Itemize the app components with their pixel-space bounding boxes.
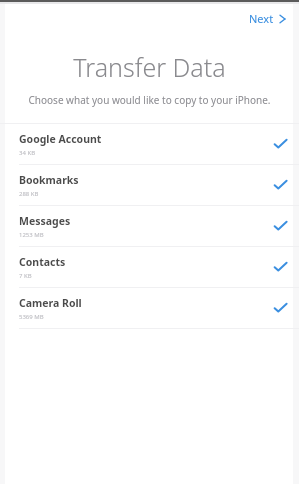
button[interactable]: Next	[245, 8, 290, 29]
staticText: 5369 MB	[19, 313, 44, 321]
staticText: Google Account	[19, 132, 102, 146]
staticText: Contacts	[19, 255, 66, 269]
staticText: Transfer Data	[0, 50, 299, 84]
other: Selected Google Account	[270, 134, 290, 154]
other: Selected Messages	[270, 216, 290, 236]
other: Selected Contacts	[270, 257, 290, 277]
staticText: Messages	[19, 214, 71, 228]
staticText: 34 KB	[19, 149, 36, 157]
button[interactable]: Bookmarks	[0, 165, 299, 205]
button[interactable]: Google Account	[0, 124, 299, 164]
other: Selected Bookmarks	[270, 175, 290, 195]
staticText: Bookmarks	[19, 173, 79, 187]
staticText: 7 KB	[19, 272, 32, 280]
button[interactable]: Camera Roll	[0, 288, 299, 328]
staticText: Next	[249, 11, 274, 26]
other: Selected Camera Roll	[270, 298, 290, 318]
staticText: 1253 MB	[19, 231, 44, 239]
staticText: Choose what you would like to copy to yo…	[26, 93, 273, 107]
button[interactable]: Messages	[0, 206, 299, 246]
staticText: 288 KB	[19, 190, 39, 198]
button[interactable]: Contacts	[0, 247, 299, 287]
staticText: Camera Roll	[19, 296, 82, 310]
